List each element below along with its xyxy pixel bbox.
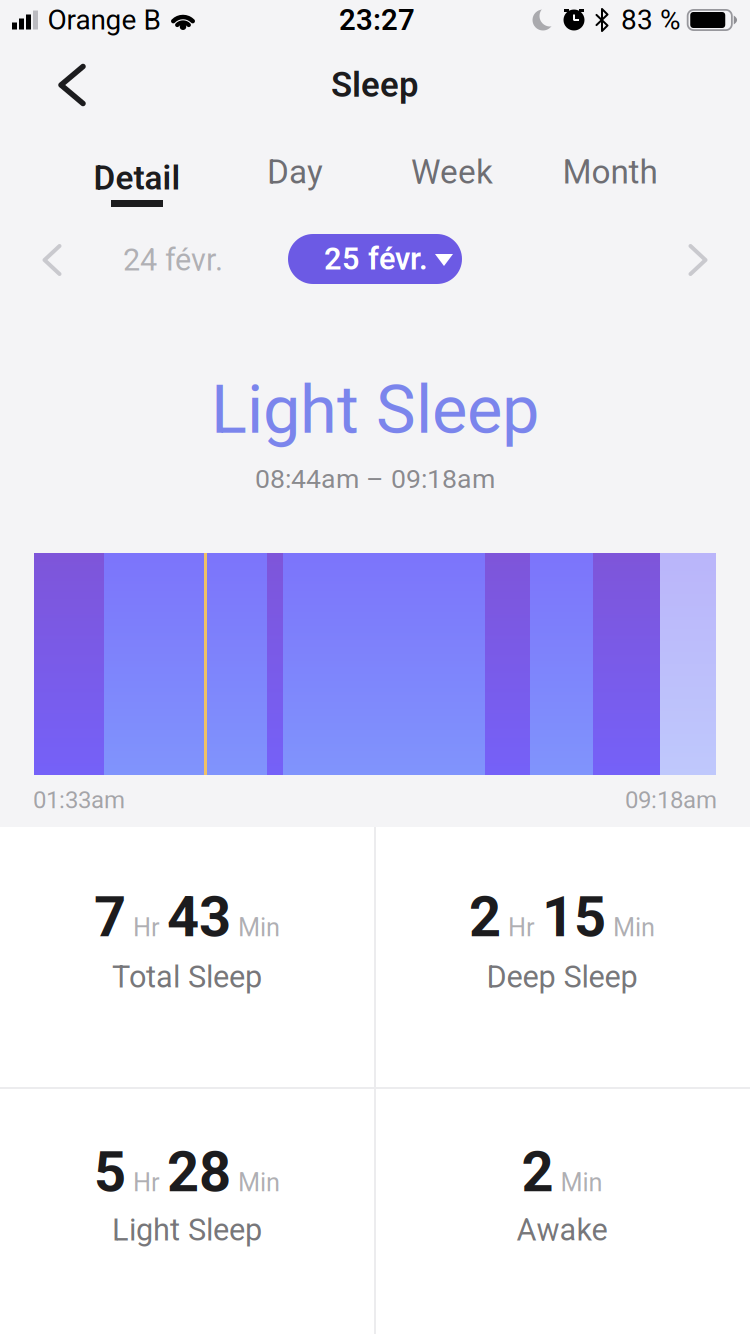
staticText: 25 févr. (324, 241, 428, 276)
staticText: 28 (167, 1140, 231, 1204)
button[interactable]: 24 févr. (115, 234, 231, 285)
staticText: Light Sleep (112, 1212, 262, 1247)
button[interactable] (678, 234, 717, 286)
staticText: 23:27 (339, 3, 415, 37)
staticText: Deep Sleep (486, 959, 637, 994)
staticText: Hr (133, 913, 160, 942)
button[interactable] (32, 234, 71, 286)
staticText: Min (238, 1168, 280, 1197)
staticText: 01:33am (33, 786, 125, 814)
staticText: Day (267, 153, 323, 191)
button[interactable]: 25 févr. (288, 234, 462, 284)
staticText: 7 (94, 885, 126, 949)
staticText: Hr (133, 1168, 160, 1197)
staticText: 15 (542, 885, 606, 949)
staticText: 08:44am – 09:18am (255, 464, 495, 494)
staticText: Min (238, 913, 280, 942)
staticText: Month (562, 153, 657, 191)
staticText: 43 (167, 885, 231, 949)
staticText: Awake (516, 1212, 607, 1247)
staticText: Min (613, 913, 655, 942)
staticText: 2 (521, 1140, 553, 1204)
staticText: 09:18am (625, 786, 717, 814)
staticText: Min (560, 1168, 602, 1197)
staticText: Hr (508, 913, 535, 942)
staticText: Sleep (331, 65, 419, 105)
staticText: Light Sleep (211, 372, 539, 448)
button[interactable]: Month (552, 143, 667, 201)
staticText: Week (411, 153, 493, 191)
staticText: Orange B (47, 4, 160, 36)
button[interactable] (41, 46, 103, 123)
staticText: Detail (93, 159, 180, 197)
staticText: Total Sleep (112, 959, 262, 994)
staticText: 2 (469, 885, 501, 949)
button[interactable]: Week (401, 143, 503, 201)
button[interactable]: Detail (93, 156, 180, 207)
staticText: 83 % (621, 4, 681, 36)
button[interactable]: Day (257, 143, 333, 201)
staticText: 5 (94, 1140, 126, 1204)
staticText: 24 févr. (123, 242, 223, 277)
